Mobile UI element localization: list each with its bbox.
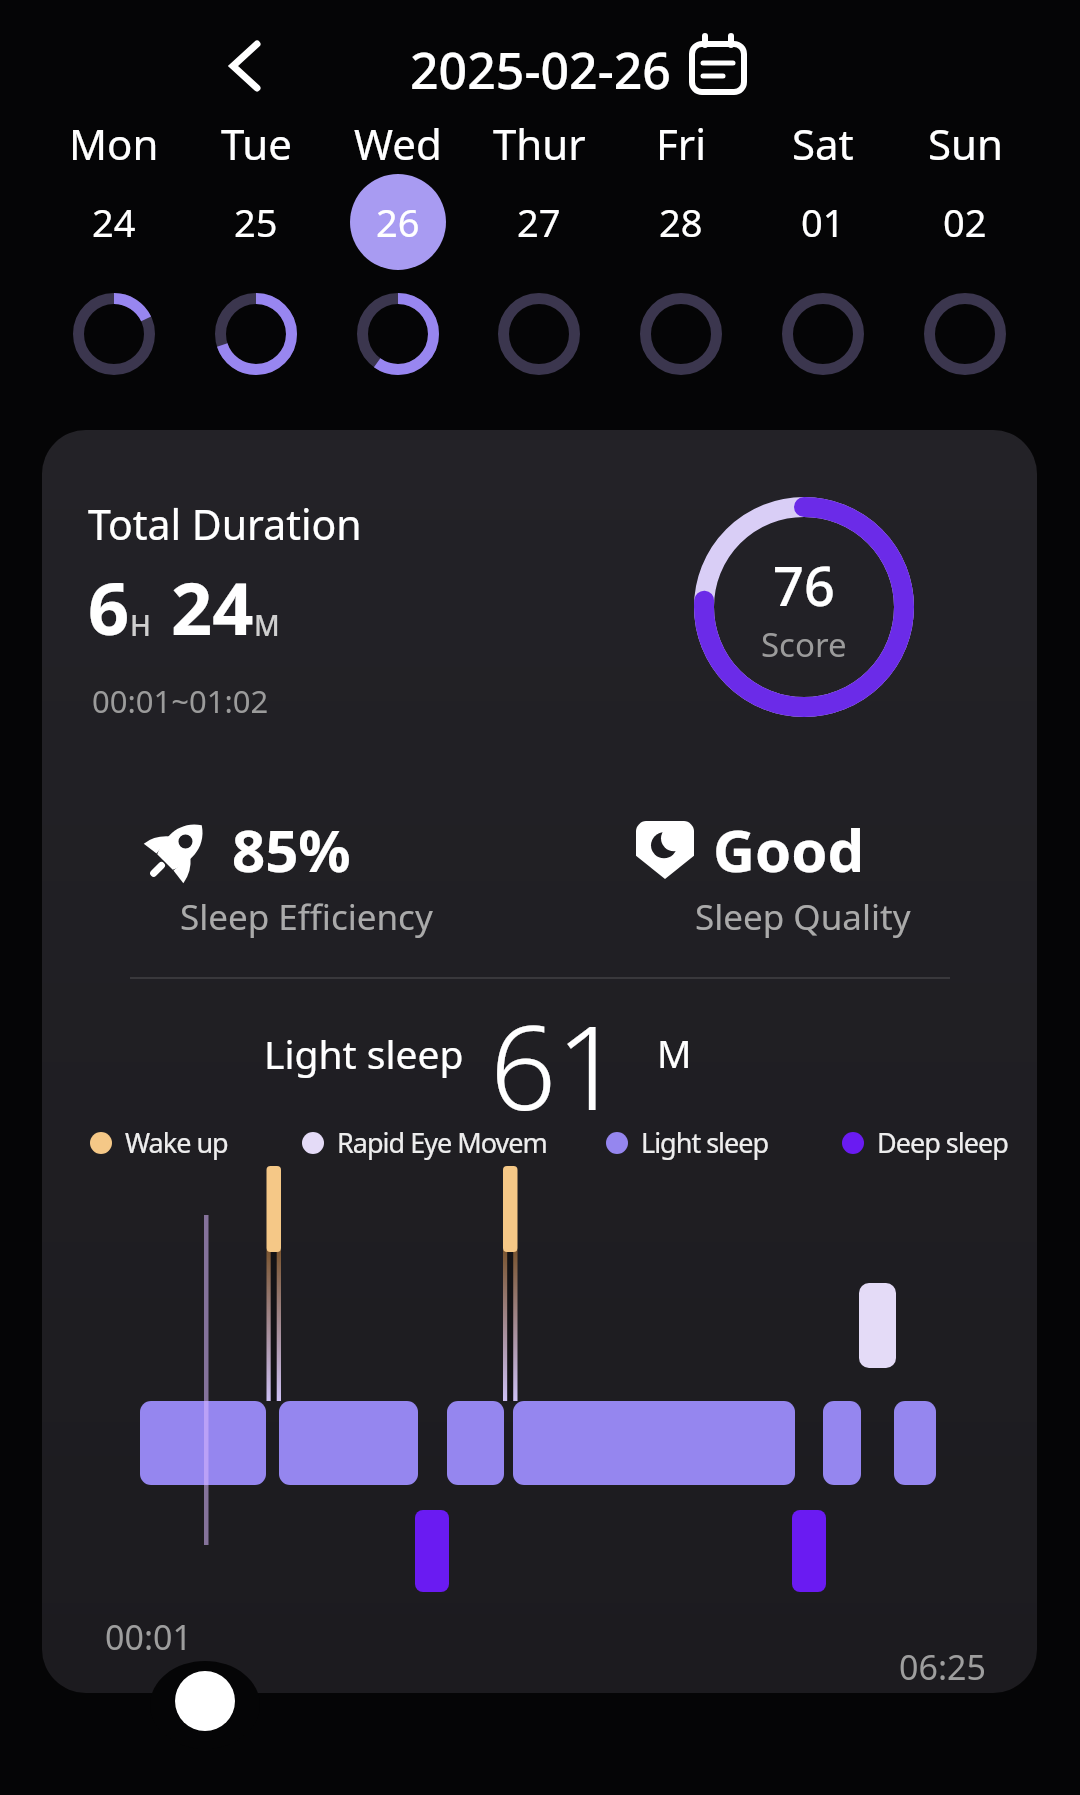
staticText: 61 (490, 986, 623, 1120)
staticText: 24 (171, 558, 254, 656)
button[interactable]: Tue (186, 112, 326, 424)
staticText: 85% (232, 810, 351, 889)
staticText: 24 (92, 196, 136, 248)
staticText: Total Duration (88, 496, 362, 552)
staticText: Wed (354, 115, 442, 172)
staticText: Wake up (125, 1124, 228, 1161)
staticText: 26 (376, 196, 420, 248)
staticText: Light sleep (264, 1027, 464, 1080)
staticText: 00:01~01:02 (92, 680, 269, 722)
staticText: 02 (943, 196, 987, 248)
staticText: 00:01 (105, 1614, 192, 1660)
staticText: 2025-02-26 (410, 36, 671, 104)
button[interactable]: Mon (44, 112, 184, 424)
staticText: Sleep Quality (695, 893, 911, 941)
staticText: 28 (659, 196, 703, 248)
staticText: 6 (88, 558, 130, 656)
staticText: Score (761, 622, 847, 667)
button[interactable] (215, 36, 275, 96)
button[interactable] (688, 30, 750, 96)
staticText: Rapid Eye Movem (337, 1124, 547, 1161)
staticText: Good (713, 810, 865, 889)
button[interactable]: Fri (611, 112, 751, 424)
staticText: M (657, 1027, 692, 1079)
staticText: Sun (928, 115, 1003, 172)
button[interactable]: Good (635, 810, 865, 937)
button[interactable]: Sat (753, 112, 893, 424)
button[interactable]: Thur (469, 112, 609, 424)
button[interactable]: Wed (328, 112, 468, 424)
button[interactable]: 85% (142, 810, 395, 937)
staticText: Thur (493, 115, 586, 172)
staticText: Deep sleep (877, 1124, 1008, 1161)
staticText: Sleep Efficiency (180, 893, 433, 941)
staticText: H (130, 606, 151, 644)
staticText: Sat (792, 115, 854, 172)
staticText: M (254, 606, 280, 644)
staticText: Mon (69, 115, 159, 172)
staticText: 06:25 (899, 1644, 986, 1690)
staticText: 01 (801, 196, 845, 248)
staticText: 25 (234, 196, 278, 248)
staticText: Fri (656, 115, 706, 172)
button[interactable]: Sun (895, 112, 1035, 424)
staticText: 27 (517, 196, 561, 248)
staticText: Light sleep (641, 1124, 769, 1161)
staticText: Tue (221, 115, 292, 172)
staticText: 76 (773, 548, 835, 622)
